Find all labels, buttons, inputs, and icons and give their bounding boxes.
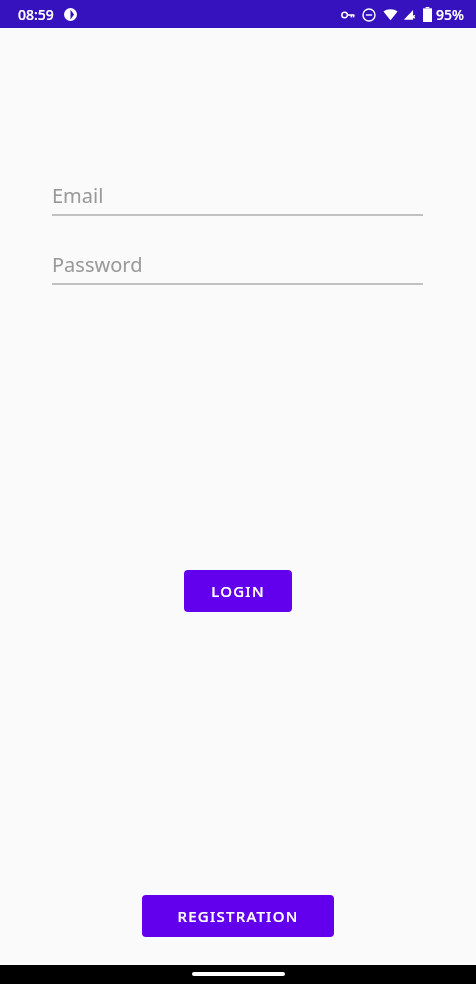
button[interactable]: Password bbox=[52, 249, 423, 285]
staticText: 08:59 bbox=[18, 5, 54, 24]
button[interactable]: REGISTRATION bbox=[142, 895, 334, 937]
other: Home gesture bbox=[192, 972, 285, 976]
button[interactable]: Email bbox=[52, 180, 423, 216]
staticText: LOGIN bbox=[211, 581, 265, 601]
staticText: Email bbox=[52, 182, 104, 209]
staticText: 95% bbox=[436, 5, 464, 24]
staticText: Password bbox=[52, 251, 143, 278]
staticText: REGISTRATION bbox=[177, 906, 299, 926]
button[interactable]: LOGIN bbox=[184, 570, 292, 612]
